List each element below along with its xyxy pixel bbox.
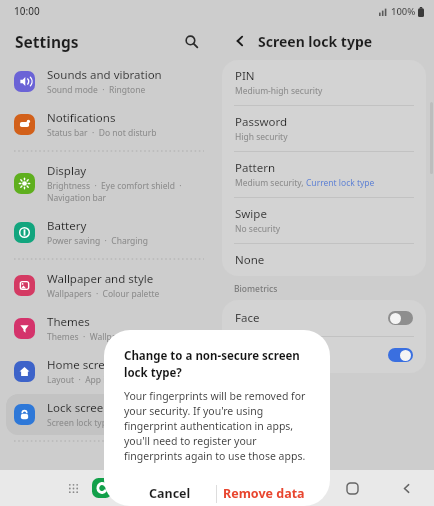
- button[interactable]: Cancel: [124, 481, 216, 506]
- button[interactable]: PIN: [222, 60, 426, 105]
- button[interactable]: App 4: [204, 478, 224, 498]
- staticText: Lock screen a: [47, 400, 120, 416]
- staticText: Change to a non-secure screen lock type?: [124, 348, 310, 380]
- staticText: PIN: [235, 68, 255, 84]
- button[interactable]: Face toggle: [388, 311, 413, 325]
- button[interactable]: Recents: [284, 474, 312, 502]
- staticText: Display: [47, 163, 87, 179]
- staticText: Wallpaper and style: [47, 271, 154, 287]
- staticText: Themes: [47, 314, 90, 330]
- staticText: Remove data: [223, 485, 305, 502]
- staticText: Password: [235, 114, 288, 130]
- staticText: Sound mode · Ringtone: [47, 84, 146, 96]
- staticText: Home screen: [47, 357, 119, 373]
- staticText: Biometrics: [234, 283, 278, 295]
- staticText: Cancel: [149, 485, 191, 502]
- staticText: Face: [235, 310, 260, 326]
- button[interactable]: Fingerprints: [222, 337, 426, 373]
- staticText: Themes · Wallpapers: [47, 331, 135, 343]
- staticText: Power saving · Charging: [47, 235, 148, 247]
- staticText: Navigation bar: [47, 192, 107, 204]
- staticText: 10:00: [14, 4, 40, 18]
- button[interactable]: Battery: [6, 212, 212, 253]
- staticText: High security: [235, 131, 288, 143]
- staticText: Current lock type: [306, 177, 375, 189]
- staticText: Screen lock type ·: [47, 417, 119, 429]
- button[interactable]: Password: [222, 106, 426, 151]
- button[interactable]: None: [222, 244, 426, 276]
- staticText: Sounds and vibration: [47, 67, 162, 83]
- button[interactable]: Swipe: [222, 198, 426, 243]
- staticText: 100%: [391, 5, 416, 18]
- button[interactable]: Sounds and vibration: [6, 61, 212, 102]
- staticText: Your fingerprints will be removed for yo…: [124, 389, 310, 463]
- button[interactable]: Home screen: [6, 351, 212, 392]
- button[interactable]: Back: [392, 474, 420, 502]
- button[interactable]: Lock screen a: [6, 394, 212, 435]
- button[interactable]: Remove data: [217, 481, 310, 506]
- button[interactable]: Pattern: [222, 152, 426, 197]
- button[interactable]: App 0: [92, 478, 112, 498]
- button[interactable]: Home: [338, 474, 366, 502]
- button[interactable]: Display: [6, 157, 212, 210]
- button[interactable]: App 3: [176, 478, 196, 498]
- staticText: Status bar · Do not disturb: [47, 127, 157, 139]
- staticText: Layout · App icons: [47, 374, 124, 386]
- staticText: Wallpapers · Colour palette: [47, 288, 160, 300]
- staticText: Swipe: [235, 206, 267, 222]
- staticText: Battery: [47, 218, 87, 234]
- staticText: Fingerprints: [235, 347, 301, 363]
- staticText: No security: [235, 223, 281, 235]
- staticText: Notifications: [47, 110, 116, 126]
- staticText: Screen lock type: [258, 32, 373, 51]
- button[interactable]: Notifications: [6, 104, 212, 145]
- button[interactable]: App 5: [232, 478, 252, 498]
- button[interactable]: Back: [228, 29, 252, 53]
- button[interactable]: Face: [222, 300, 426, 336]
- button[interactable]: Wallpaper and style: [6, 265, 212, 306]
- staticText: Pattern: [235, 160, 276, 176]
- staticText: Brightness · Eye comfort shield ·: [47, 180, 182, 192]
- button[interactable]: Search: [178, 28, 204, 54]
- button[interactable]: Fingerprints toggle: [388, 348, 413, 362]
- staticText: Medium-high security: [235, 85, 323, 97]
- staticText: Settings: [15, 31, 79, 52]
- staticText: None: [235, 252, 265, 268]
- button[interactable]: Apps: [62, 477, 84, 499]
- staticText: Medium security,: [235, 177, 306, 189]
- button[interactable]: Themes: [6, 308, 212, 349]
- button[interactable]: App 2: [148, 478, 168, 498]
